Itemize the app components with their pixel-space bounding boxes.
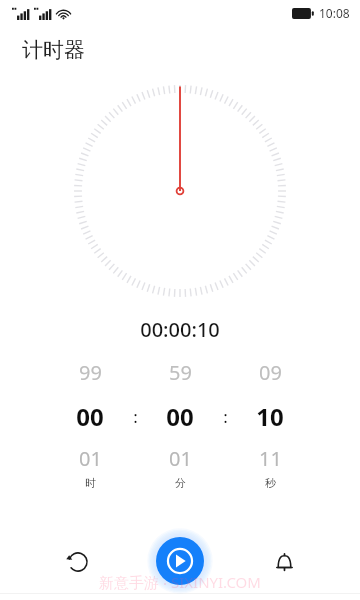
button[interactable]: 01 [53,445,127,472]
staticText: 分 [175,476,186,490]
button[interactable]: 59 [143,359,217,386]
staticText: 09 [259,359,282,386]
staticText: : [223,405,228,428]
staticText: : [133,405,138,428]
button[interactable]: 秒 [233,476,307,490]
button[interactable]: 10 [233,400,307,433]
staticText: 时 [85,476,96,490]
staticText: 00 [166,400,194,433]
button[interactable]: 99 [53,359,127,386]
button[interactable]: Ringtone [266,544,302,580]
button[interactable]: 00 [53,400,127,433]
staticText: 10 [256,400,284,433]
staticText: 新意手游 ‧ SIXINYI.COM [99,572,261,592]
staticText: 01 [169,445,192,472]
staticText: 11 [259,445,282,472]
button[interactable]: 11 [233,445,307,472]
button[interactable]: 时 [53,476,127,490]
staticText: 00:00:10 [140,316,220,343]
staticText: 01 [79,445,102,472]
button[interactable]: 09 [233,359,307,386]
button[interactable]: 分 [143,476,217,490]
button[interactable]: 00 [143,400,217,433]
staticText: 10:08 [319,5,350,21]
button[interactable]: Reset [60,544,96,580]
staticText: 计时器 [22,37,85,63]
staticText: 59 [169,359,192,386]
staticText: 00 [76,400,104,433]
button[interactable]: 01 [143,445,217,472]
staticText: 秒 [265,476,276,490]
button[interactable]: Start [147,528,213,594]
staticText: 99 [79,359,102,386]
